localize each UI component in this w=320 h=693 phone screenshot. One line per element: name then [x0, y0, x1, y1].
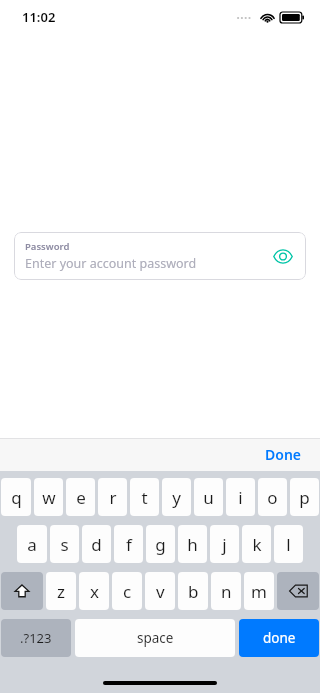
button[interactable]: Backspace [277, 572, 319, 610]
staticText: g [155, 533, 166, 556]
staticText: x [90, 580, 99, 603]
button[interactable]: space [75, 619, 235, 657]
staticText: a [27, 533, 37, 556]
button[interactable]: f [114, 525, 143, 563]
button[interactable]: .?123 [1, 619, 71, 657]
staticText: Password [25, 240, 70, 253]
button[interactable]: j [210, 525, 239, 563]
staticText: p [299, 486, 310, 509]
button[interactable]: done [239, 619, 319, 657]
button[interactable]: s [50, 525, 79, 563]
button[interactable]: y [162, 478, 191, 516]
button[interactable]: k [242, 525, 271, 563]
staticText: y [172, 486, 181, 509]
staticText: m [251, 580, 267, 603]
staticText: e [76, 486, 86, 509]
staticText: n [221, 580, 232, 603]
button[interactable]: p [290, 478, 319, 516]
staticText: z [57, 580, 65, 603]
button[interactable]: h [178, 525, 207, 563]
staticText: j [222, 533, 227, 556]
staticText: .?123 [20, 629, 52, 647]
button[interactable]: w [34, 478, 63, 516]
button[interactable]: d [82, 525, 111, 563]
staticText: v [156, 580, 165, 603]
button[interactable]: q [1, 478, 31, 516]
staticText: w [42, 486, 56, 509]
button[interactable]: c [112, 572, 142, 610]
staticText: h [187, 533, 198, 556]
button[interactable]: e [66, 478, 95, 516]
staticText: space [137, 629, 174, 647]
staticText: o [267, 486, 278, 509]
button[interactable]: m [244, 572, 274, 610]
button[interactable]: a [17, 525, 47, 563]
staticText: 11:02 [22, 8, 56, 26]
button[interactable]: x [79, 572, 109, 610]
staticText: Done [265, 445, 302, 464]
staticText: i [238, 486, 243, 509]
button[interactable]: b [178, 572, 208, 610]
button[interactable]: z [46, 572, 76, 610]
button[interactable]: Done [261, 441, 306, 468]
staticText: f [126, 533, 132, 556]
button[interactable]: r [98, 478, 127, 516]
staticText: s [60, 533, 69, 556]
staticText: c [123, 580, 132, 603]
button[interactable]: o [258, 478, 287, 516]
staticText: l [286, 533, 291, 556]
staticText: t [141, 486, 148, 509]
staticText: d [91, 533, 102, 556]
button[interactable]: Show password [269, 242, 297, 270]
staticText: Enter your account password [25, 255, 197, 272]
button[interactable]: Password [14, 232, 306, 280]
button[interactable]: t [130, 478, 159, 516]
button[interactable]: g [146, 525, 175, 563]
button[interactable]: v [145, 572, 175, 610]
staticText: b [188, 580, 199, 603]
button[interactable]: l [274, 525, 303, 563]
button[interactable]: i [226, 478, 255, 516]
button[interactable]: u [194, 478, 223, 516]
staticText: u [203, 486, 214, 509]
staticText: q [11, 486, 22, 509]
button[interactable]: Shift [1, 572, 43, 610]
button[interactable]: n [211, 572, 241, 610]
staticText: r [109, 486, 117, 509]
staticText: done [263, 629, 296, 647]
staticText: k [252, 533, 262, 556]
